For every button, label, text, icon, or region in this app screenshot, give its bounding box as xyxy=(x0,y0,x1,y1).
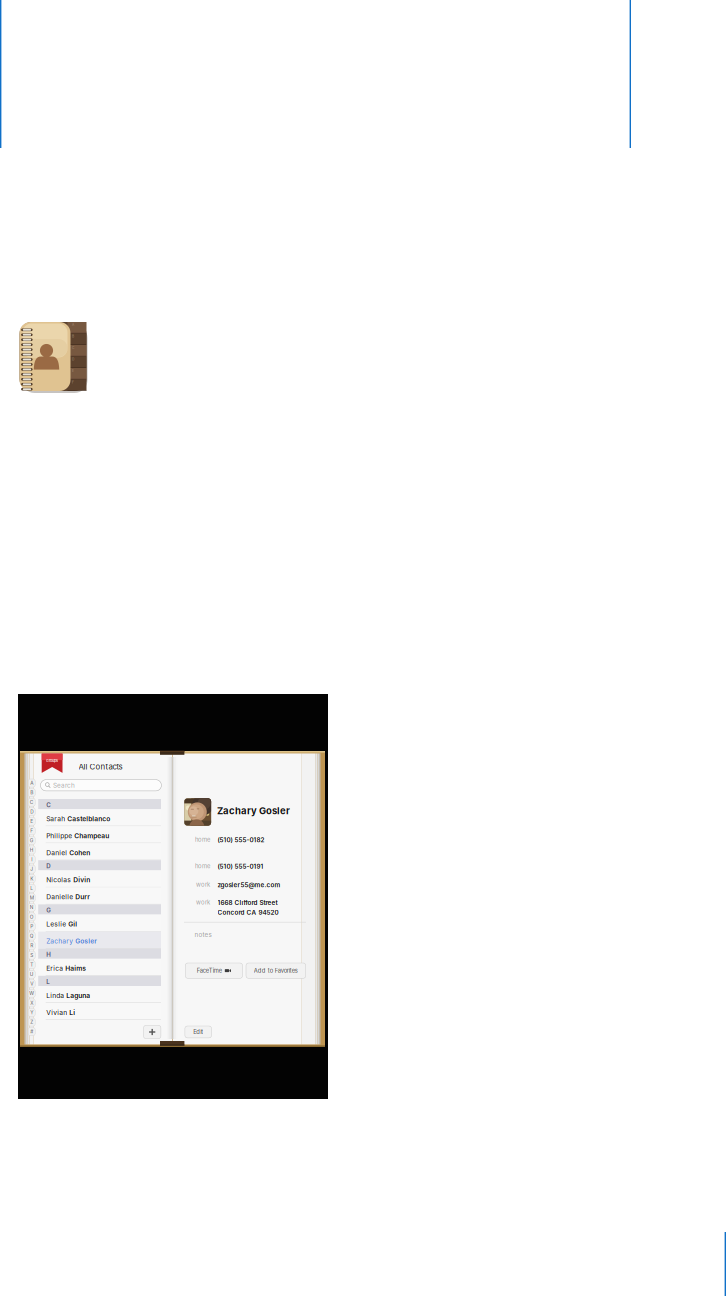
staticText: Linda xyxy=(46,991,66,1000)
staticText: Y xyxy=(30,1010,33,1015)
staticText: home xyxy=(195,836,210,843)
staticText: Gosler xyxy=(75,937,97,945)
staticText: F xyxy=(30,828,33,834)
staticText: C xyxy=(72,346,74,350)
staticText: Sarah xyxy=(46,815,67,823)
staticText: L xyxy=(46,978,49,985)
staticText: T xyxy=(30,962,33,968)
staticText: O xyxy=(30,914,34,920)
staticText: Daniel xyxy=(46,849,69,857)
staticText: Z xyxy=(30,1019,33,1025)
staticText: A xyxy=(72,323,74,327)
staticText: home xyxy=(195,863,210,870)
button[interactable]: Erica xyxy=(38,959,161,976)
staticText: All Contacts xyxy=(79,762,123,771)
staticText: B xyxy=(30,790,33,795)
staticText: # xyxy=(30,1029,33,1034)
staticText: V xyxy=(30,981,33,987)
staticText: G xyxy=(46,907,51,914)
staticText: U xyxy=(30,971,34,977)
staticText: work xyxy=(196,899,210,906)
staticText: zgosler55@me.com xyxy=(218,881,281,889)
button[interactable]: Edit xyxy=(185,1026,211,1038)
staticText: Concord CA 94520 xyxy=(218,909,279,916)
staticText: Divin xyxy=(73,876,90,884)
staticText: (510) 555-0182 xyxy=(218,836,265,844)
staticText: X xyxy=(30,1000,33,1006)
staticText: Nicolas xyxy=(46,876,73,884)
button[interactable]: Groups xyxy=(42,754,62,773)
button[interactable]: Search xyxy=(40,780,161,791)
staticText: Search xyxy=(53,781,75,789)
staticText: Add to Favorites xyxy=(254,967,298,974)
staticText: Haims xyxy=(65,964,86,972)
button[interactable]: FaceTime xyxy=(185,963,242,978)
staticText: Durr xyxy=(75,893,90,901)
staticText: notes xyxy=(195,931,212,939)
staticText: G xyxy=(30,837,34,843)
staticText: C xyxy=(46,801,51,809)
staticText: 1668 Clifford Street xyxy=(218,899,278,906)
staticText: H xyxy=(30,847,34,853)
staticText: work xyxy=(196,881,210,888)
staticText: C xyxy=(30,799,34,805)
staticText: D xyxy=(30,809,33,815)
staticText: K xyxy=(30,876,33,881)
staticText: D xyxy=(46,862,50,870)
staticText: Champeau xyxy=(74,832,109,840)
staticText: (510) 555-0191 xyxy=(218,863,264,870)
staticText: B xyxy=(72,334,74,338)
staticText: Leslie xyxy=(46,920,68,928)
staticText: M xyxy=(30,895,34,901)
button[interactable]: Linda xyxy=(38,986,161,1003)
button[interactable]: Zachary xyxy=(38,932,161,949)
staticText: W xyxy=(29,990,34,996)
button[interactable]: Daniel xyxy=(38,843,161,860)
staticText: R xyxy=(30,943,33,948)
staticText: Q xyxy=(30,933,34,939)
staticText: J xyxy=(30,866,33,872)
staticText: Vivian xyxy=(46,1008,69,1017)
staticText: A xyxy=(30,780,33,786)
staticText: Laguna xyxy=(66,991,90,1000)
button[interactable]: Danielle xyxy=(38,887,161,904)
staticText: I xyxy=(31,857,32,862)
staticText: Danielle xyxy=(46,893,75,901)
staticText: E xyxy=(72,369,74,373)
staticText: E xyxy=(30,818,33,824)
staticText: D xyxy=(72,357,74,361)
staticText: P xyxy=(30,923,33,929)
staticText: Erica xyxy=(46,964,65,972)
staticText: H xyxy=(46,951,51,958)
staticText: Zachary xyxy=(46,937,75,945)
button[interactable]: Philippe xyxy=(38,826,161,843)
staticText: Gil xyxy=(68,920,77,928)
button[interactable]: Add contact xyxy=(143,1025,161,1039)
button[interactable]: Vivian xyxy=(38,1003,161,1020)
button[interactable]: Leslie xyxy=(38,915,161,932)
staticText: Zachary Gosler xyxy=(217,805,290,816)
staticText: N xyxy=(30,904,34,910)
staticText: Edit xyxy=(193,1028,203,1035)
staticText: L xyxy=(30,885,33,891)
button[interactable]: Nicolas xyxy=(38,870,161,887)
staticText: Groups xyxy=(46,758,58,763)
staticText: Castelblanco xyxy=(67,815,110,823)
staticText: FaceTime xyxy=(197,967,222,974)
button[interactable]: Add to Favorites xyxy=(246,963,306,978)
button[interactable]: Sarah xyxy=(38,809,161,826)
staticText: S xyxy=(30,952,33,958)
staticText: Cohen xyxy=(69,849,90,857)
staticText: Philippe xyxy=(46,832,74,840)
staticText: Li xyxy=(69,1008,75,1017)
staticText: F xyxy=(72,380,74,384)
